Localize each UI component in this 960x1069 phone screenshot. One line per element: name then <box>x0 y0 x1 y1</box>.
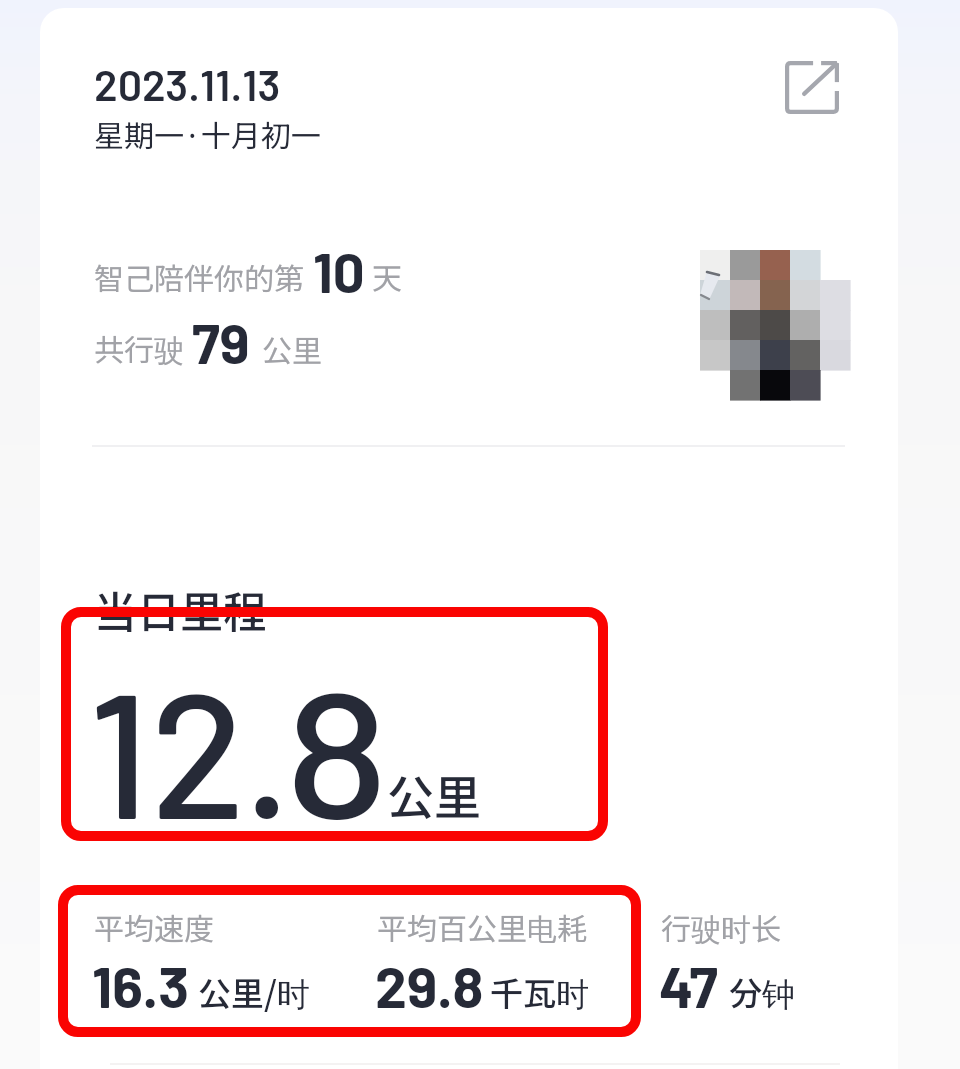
button[interactable]: 当日里程 <box>80 575 510 840</box>
button[interactable]: Profile photo <box>700 250 850 400</box>
staticText: 公里 <box>262 327 322 370</box>
staticText: 天 <box>372 254 402 297</box>
staticText: 2023.11.13 <box>94 58 281 110</box>
staticText: 共行驶 <box>94 326 184 370</box>
button[interactable]: 2023.11.13 <box>80 50 380 166</box>
staticText: 29.8 <box>375 951 484 1019</box>
staticText: . <box>243 643 292 854</box>
button[interactable]: 行驶时长 <box>647 900 917 1025</box>
staticText: 公里 <box>387 760 481 828</box>
staticText: 8 <box>285 643 389 854</box>
staticText: 公里/时 <box>198 968 310 1016</box>
staticText: 47 <box>659 951 718 1019</box>
staticText: 平均速度 <box>94 905 214 948</box>
button[interactable]: 平均百公里电耗 <box>363 900 633 1025</box>
staticText: 10 <box>313 237 365 304</box>
button[interactable]: Share <box>765 41 859 135</box>
staticText: 分钟 <box>729 968 795 1016</box>
staticText: 行驶时长 <box>661 905 781 949</box>
button[interactable]: 平均速度 <box>80 900 350 1025</box>
staticText: 智己陪伴你的第 <box>94 255 304 298</box>
staticText: 千瓦时 <box>490 968 589 1016</box>
staticText: 星期一·十月初一 <box>94 112 321 155</box>
staticText: 平均百公里电耗 <box>377 905 587 949</box>
staticText: 16.3 <box>92 951 189 1019</box>
button[interactable]: 智己陪伴你的第 <box>80 240 420 385</box>
staticText: 当日里程 <box>94 578 266 640</box>
staticText: 12 <box>88 643 246 854</box>
staticText: 79 <box>192 308 250 375</box>
